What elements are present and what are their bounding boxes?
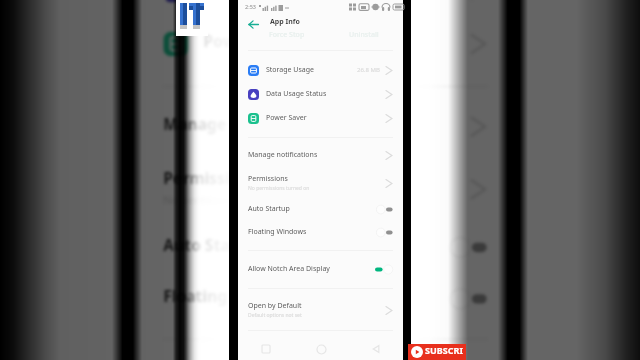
staticText: Data Usage Status [266,89,327,99]
button[interactable]: Back [368,341,384,357]
staticText: No permissions turned on [248,185,310,192]
button[interactable]: Auto Startup [238,198,403,220]
button[interactable]: Permissions [238,170,403,196]
staticText: Auto Startup [248,204,290,214]
staticText: App Info [270,17,300,27]
staticText: Uninstall [349,30,379,40]
button[interactable]: Back [244,15,262,33]
staticText: Open by Default [248,301,302,311]
staticText: No permissions turned on [163,193,302,208]
staticText: Floating Windows [163,287,302,309]
staticText: Manage notifications [163,114,331,137]
button[interactable]: Recent apps [258,341,274,357]
button[interactable]: Home [313,341,329,357]
button[interactable]: Storage Usage [238,59,403,81]
staticText: Allow Notch Area Display [248,264,330,274]
staticText: Storage Usage [266,65,315,75]
staticText: Power Saver [204,32,302,54]
staticText: 2:53 [245,3,256,10]
staticText: 26.8 MB [357,66,380,74]
button[interactable]: Manage notifications [238,144,403,166]
staticText: Force Stop [269,30,305,40]
staticText: Permissions [163,168,259,190]
button[interactable]: Power Saver [238,107,403,129]
button[interactable]: Data Usage Status [238,83,403,105]
staticText: Manage notifications [248,150,318,160]
staticText: SUBSCRIBE [425,344,466,360]
button[interactable]: Open by Default [238,297,403,323]
staticText: Auto Startup [163,235,264,257]
staticText: Permissions [248,174,288,184]
staticText: Power Saver [266,113,307,123]
staticText: Floating Windows [248,227,307,237]
button[interactable]: SUBSCRIBE [408,344,466,360]
button[interactable]: Floating Windows [238,221,403,243]
staticText: Default options not set [248,312,302,319]
button[interactable]: Allow Notch Area Display [238,258,403,280]
